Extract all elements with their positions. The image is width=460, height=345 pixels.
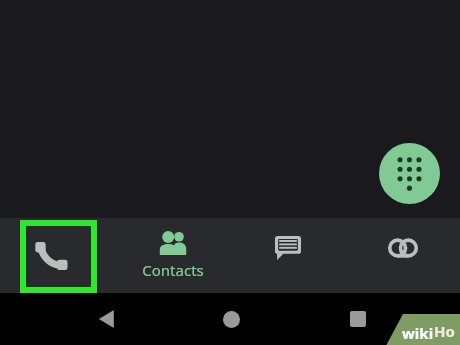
button[interactable]: Messages bbox=[230, 218, 345, 293]
button[interactable]: Contacts bbox=[115, 218, 230, 293]
button[interactable]: Home bbox=[209, 293, 253, 345]
staticText: How bbox=[434, 321, 460, 345]
button[interactable]: Open dialpad bbox=[379, 143, 440, 204]
button[interactable]: Recents, phone bbox=[0, 218, 115, 293]
button[interactable]: Back bbox=[85, 293, 129, 345]
staticText: Contacts bbox=[142, 260, 204, 280]
button[interactable]: Recent apps bbox=[336, 293, 380, 345]
button[interactable]: Voicemail bbox=[345, 218, 460, 293]
staticText: wiki bbox=[402, 323, 434, 343]
